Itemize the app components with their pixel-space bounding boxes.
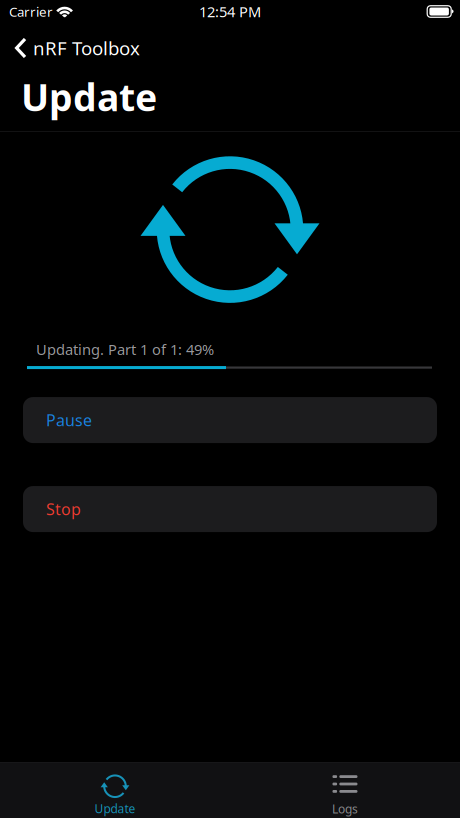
button[interactable]: Stop — [23, 486, 437, 532]
button[interactable]: Update — [0, 763, 230, 817]
staticText: Update — [21, 72, 157, 122]
staticText: Stop — [46, 498, 81, 520]
staticText: Updating. Part 1 of 1: 49% — [36, 340, 214, 359]
button[interactable]: Logs — [230, 762, 460, 817]
staticText: 12:54 PM — [199, 2, 261, 21]
staticText: Update — [94, 801, 135, 817]
staticText: Carrier — [9, 3, 53, 20]
staticText: Pause — [46, 409, 92, 431]
staticText: nRF Toolbox — [33, 36, 140, 60]
button[interactable]: nRF Toolbox — [0, 34, 152, 62]
button[interactable]: Pause — [23, 397, 437, 443]
staticText: Logs — [332, 801, 358, 817]
